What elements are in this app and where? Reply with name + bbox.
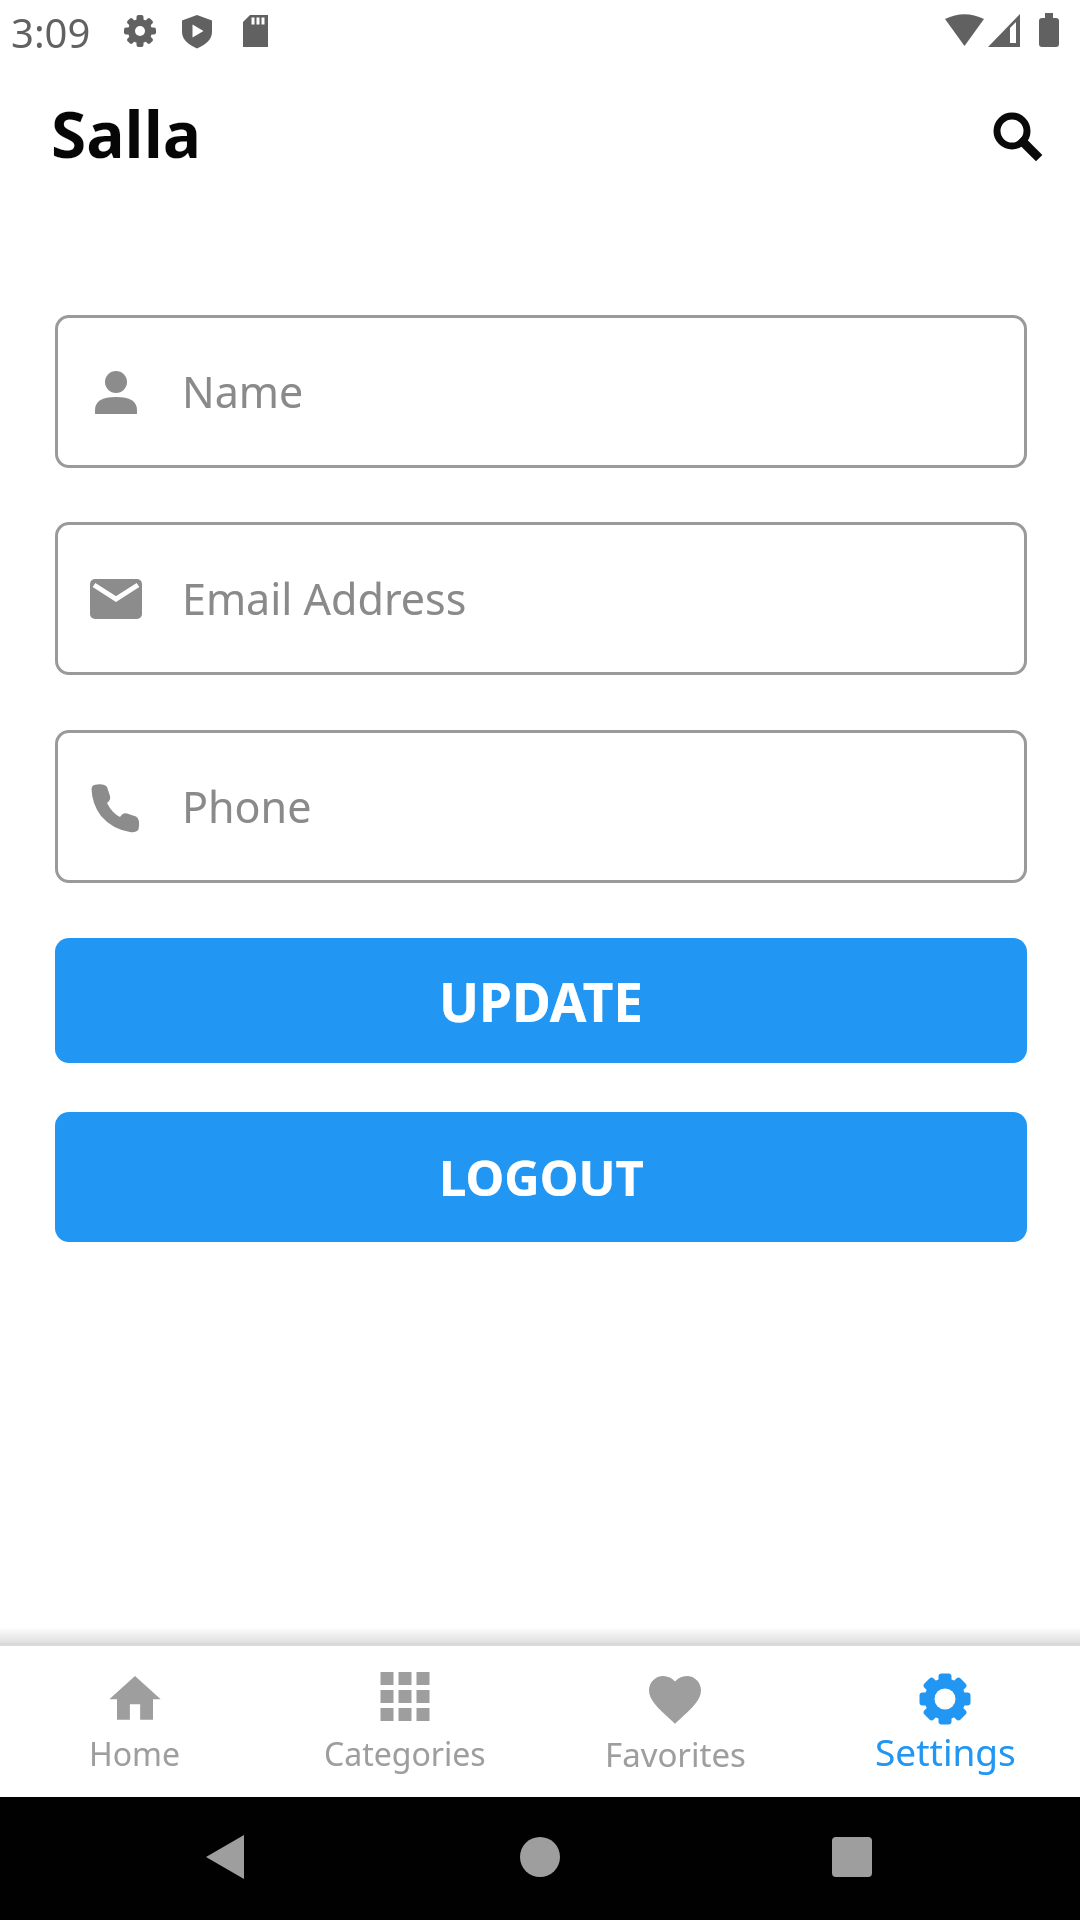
button[interactable]: Name [55,315,1027,468]
staticText: Salla [51,90,202,177]
button[interactable] [985,104,1047,166]
button[interactable] [493,1810,587,1904]
button[interactable]: LOGOUT [55,1112,1027,1242]
button[interactable]: Phone [55,730,1027,883]
staticText: Email Address [182,569,467,628]
button[interactable]: Email Address [55,522,1027,675]
staticText: Name [182,362,304,421]
button[interactable] [805,1810,899,1904]
button[interactable]: Favorites [540,1646,810,1797]
staticText: Categories [324,1732,486,1776]
button[interactable]: Settings [810,1646,1080,1797]
staticText: Phone [182,777,312,836]
button[interactable] [178,1810,272,1904]
staticText: LOGOUT [439,1144,644,1211]
staticText: Favorites [605,1732,746,1777]
button[interactable]: Home [0,1646,270,1797]
staticText: 3:09 [11,5,91,59]
button[interactable]: Categories [270,1646,540,1797]
staticText: UPDATE [439,965,643,1037]
staticText: Settings [875,1726,1016,1776]
staticText: Home [89,1732,181,1776]
button[interactable]: UPDATE [55,938,1027,1063]
